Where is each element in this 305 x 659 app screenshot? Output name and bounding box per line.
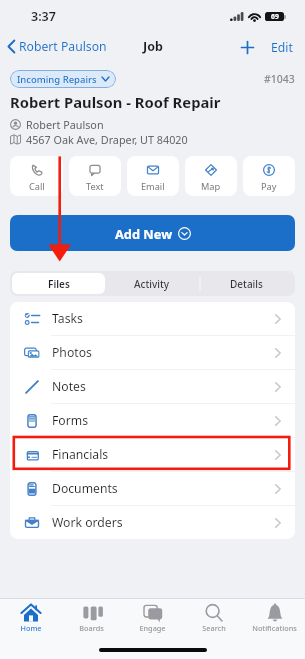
staticText: Search	[202, 623, 226, 633]
button[interactable]: Forms	[10, 404, 295, 437]
button[interactable]: Map	[185, 156, 237, 196]
staticText: Email	[141, 180, 165, 193]
staticText: Map	[201, 180, 221, 193]
button[interactable]: Call	[10, 156, 63, 196]
button[interactable]: Boards	[61, 599, 122, 637]
staticText: Forms	[52, 412, 88, 429]
button[interactable]: Pay	[243, 156, 295, 196]
staticText: Boards	[79, 623, 104, 633]
staticText: Pay	[261, 180, 277, 193]
staticText: Notifications	[252, 623, 297, 633]
staticText: Call	[29, 180, 45, 193]
staticText: 4567 Oak Ave, Draper, UT 84020	[26, 132, 188, 147]
staticText: Robert Paulson	[19, 38, 107, 55]
button[interactable]: Financials	[10, 438, 295, 471]
staticText: Files	[48, 277, 70, 291]
button[interactable]: Notes	[10, 370, 295, 403]
button[interactable]: Email	[127, 156, 179, 196]
staticText: 69	[271, 12, 279, 21]
button[interactable]: Documents	[10, 472, 295, 505]
button[interactable]: Activity	[105, 273, 199, 294]
staticText: Robert Paulson - Roof Repair	[10, 92, 221, 112]
button[interactable]: Tasks	[10, 302, 295, 335]
staticText: Documents	[52, 480, 118, 497]
button[interactable]: Photos	[10, 336, 295, 369]
staticText: #1043	[264, 72, 295, 86]
staticText: Tasks	[52, 310, 83, 327]
button[interactable]: Robert Paulson	[6, 35, 108, 58]
staticText: Incoming Repairs	[17, 73, 97, 86]
button[interactable]: Add	[237, 37, 257, 57]
staticText: Work orders	[52, 514, 123, 531]
button[interactable]: Engage	[122, 599, 183, 637]
staticText: Text	[86, 180, 104, 193]
staticText: Activity	[134, 277, 170, 291]
button[interactable]: Incoming Repairs	[10, 70, 116, 88]
button[interactable]: Notifications	[244, 599, 305, 637]
button[interactable]: Text	[69, 156, 121, 196]
staticText: Photos	[52, 344, 92, 361]
button[interactable]: Edit	[271, 39, 293, 56]
staticText: Details	[230, 277, 263, 291]
staticText: Job	[143, 38, 163, 55]
staticText: Notes	[52, 378, 86, 395]
button[interactable]: Home	[0, 599, 61, 637]
button[interactable]: Search	[183, 599, 244, 637]
staticText: 3:37	[31, 8, 56, 25]
button[interactable]: Work orders	[10, 506, 295, 539]
button[interactable]: Files	[12, 273, 105, 294]
button[interactable]: Add New	[10, 215, 295, 251]
staticText: Robert Paulson	[26, 117, 104, 132]
staticText: Financials	[52, 446, 109, 463]
staticText: Edit	[271, 39, 293, 56]
button[interactable]: Details	[199, 273, 293, 294]
staticText: Home	[20, 623, 42, 633]
staticText: Add New	[115, 225, 173, 242]
staticText: Engage	[139, 623, 166, 633]
